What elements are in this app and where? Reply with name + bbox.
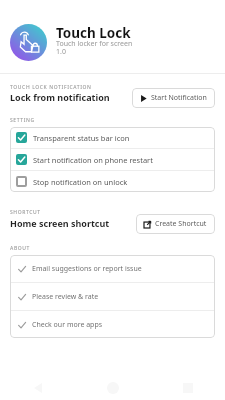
staticText: TOUCH LOCK NOTIFICATION bbox=[10, 84, 92, 91]
button[interactable]: Transparent status bar icon bbox=[10, 127, 215, 148]
button[interactable]: Email suggestions or report issue bbox=[10, 255, 215, 282]
button[interactable]: Start Notification bbox=[132, 88, 215, 108]
staticText: SHORTCUT bbox=[10, 209, 41, 216]
staticText: Create Shortcut bbox=[155, 219, 207, 229]
staticText: ABOUT bbox=[10, 245, 30, 252]
button[interactable]: Create Shortcut bbox=[136, 214, 215, 234]
staticText: Start Notification bbox=[151, 93, 207, 103]
staticText: Lock from notification bbox=[10, 91, 110, 103]
staticText: Check our more apps bbox=[32, 320, 103, 330]
staticText: Home screen shortcut bbox=[10, 217, 110, 229]
staticText: Touch locker for screen bbox=[56, 39, 133, 49]
staticText: Transparent status bar icon bbox=[33, 133, 130, 143]
staticText: SETTING bbox=[10, 117, 35, 124]
staticText: Please review & rate bbox=[32, 292, 99, 302]
staticText: Email suggestions or report issue bbox=[32, 264, 142, 274]
staticText: 1.0 bbox=[56, 47, 66, 57]
button[interactable]: Check our more apps bbox=[10, 311, 215, 338]
button[interactable]: Stop notification on unlock bbox=[10, 171, 215, 192]
button[interactable]: Please review & rate bbox=[10, 283, 215, 310]
staticText: Stop notification on unlock bbox=[33, 177, 128, 187]
button[interactable]: Start notification on phone restart bbox=[10, 149, 215, 170]
staticText: Touch Lock bbox=[56, 24, 131, 42]
staticText: Start notification on phone restart bbox=[33, 155, 153, 165]
